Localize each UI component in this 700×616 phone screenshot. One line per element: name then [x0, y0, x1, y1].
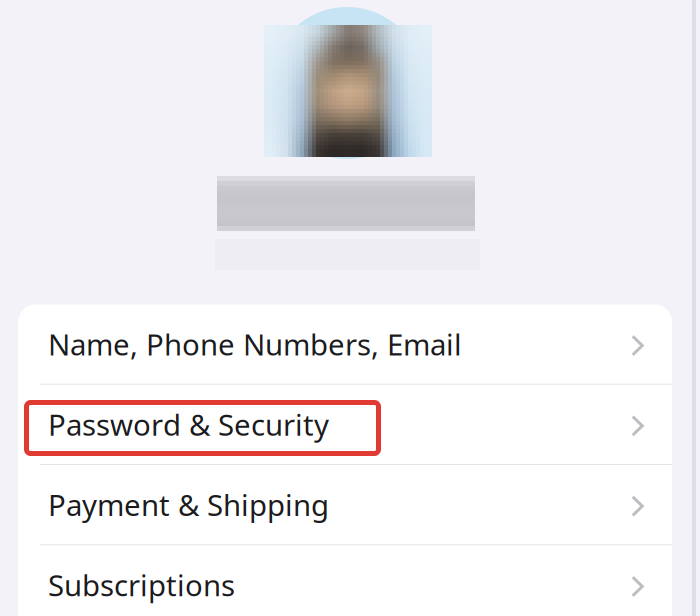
- button[interactable]: Subscriptions: [18, 545, 672, 616]
- staticText: Subscriptions: [48, 565, 235, 604]
- staticText: Payment & Shipping: [48, 485, 329, 524]
- button[interactable]: Payment & Shipping: [18, 465, 672, 544]
- button[interactable]: Name, Phone Numbers, Email: [18, 304, 672, 384]
- button[interactable]: Password & Security: [18, 385, 672, 464]
- staticText: Password & Security: [48, 405, 329, 444]
- staticText: Name, Phone Numbers, Email: [48, 325, 462, 364]
